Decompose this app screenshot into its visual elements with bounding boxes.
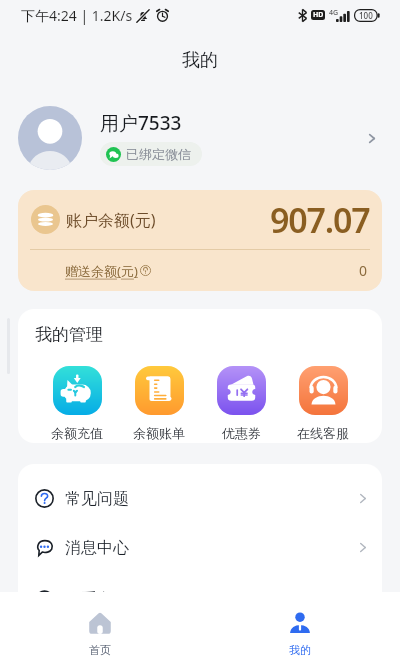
staticText: 我的管理 [35,324,103,345]
staticText: 在线客服 [297,425,349,441]
staticText: 用户7533 [100,110,182,136]
button[interactable]: 我的 [200,592,400,666]
staticText: 余额账单 [133,425,185,441]
button[interactable]: 用户7533 [0,85,400,190]
button[interactable]: 在线客服 [291,366,355,441]
staticText: 联系客服 [65,590,129,592]
staticText: 907.07 [270,197,370,243]
staticText: 我的 [289,643,311,657]
button[interactable]: 个人资料 [360,126,384,150]
button[interactable]: 已绑定微信 [100,142,202,166]
staticText: 余额充值 [51,425,103,441]
button[interactable]: 优惠券 [209,366,273,441]
button[interactable]: 余额账单 [127,366,191,441]
staticText: 赠送余额(元) [65,262,138,280]
staticText: 4G [329,8,339,18]
button[interactable]: 账户余额(元) [18,190,382,291]
button[interactable]: 常见问题 [18,474,382,523]
staticText: 0 [359,261,368,280]
staticText: 消息中心 [65,538,129,558]
button[interactable]: 余额充值 [45,366,109,441]
staticText: 优惠券 [222,425,261,441]
staticText: HD [313,10,324,20]
staticText: 下午4:24 | 1.2K/s [21,6,133,25]
staticText: 常见问题 [65,489,129,509]
button[interactable]: 消息中心 [18,523,382,572]
staticText: 已绑定微信 [126,146,191,162]
staticText: 我的 [182,49,218,72]
staticText: 首页 [89,643,111,657]
staticText: 100 [359,10,373,21]
button[interactable]: 联系客服 [18,575,382,592]
button[interactable]: 首页 [0,592,200,666]
staticText: 账户余额(元) [66,209,156,231]
